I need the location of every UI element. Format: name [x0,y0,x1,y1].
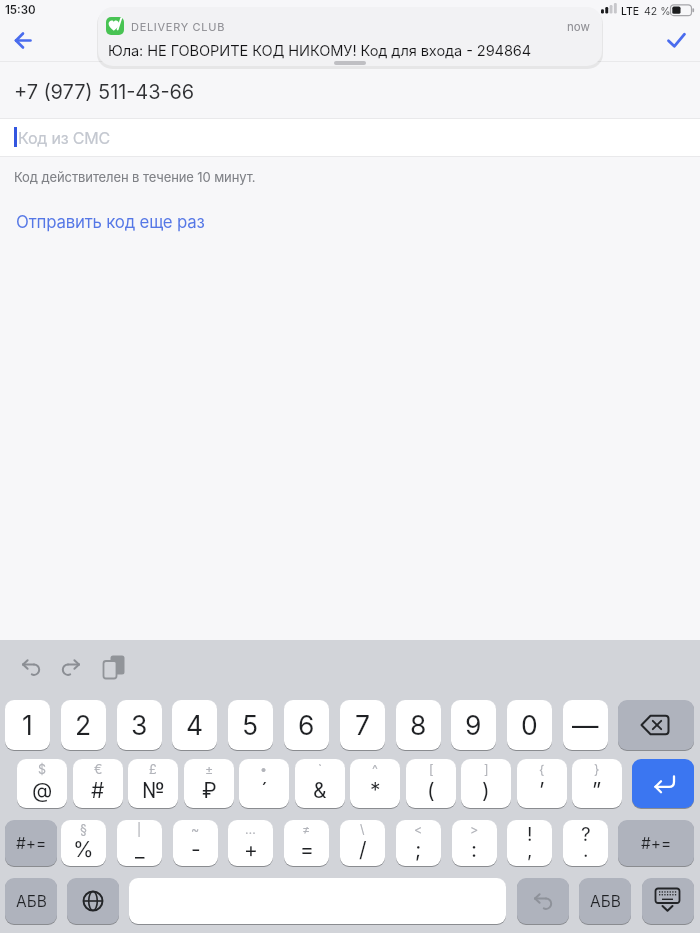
staticText: £ [149,762,157,777]
staticText: / [359,837,367,862]
staticText: ] [484,762,489,777]
button[interactable]: $ [17,759,67,808]
staticText: ^ [372,762,378,777]
staticText: ) [482,778,490,803]
staticText: ’ [539,778,545,803]
staticText: < [414,822,423,837]
staticText: now [567,20,590,34]
button[interactable]: } [572,759,622,808]
staticText: ₽ [202,778,217,803]
button[interactable]: [ [406,759,456,808]
button[interactable]: #+= [5,820,57,866]
button[interactable]: > [452,820,497,866]
button[interactable] [660,28,694,52]
button[interactable]: DELIVERY CLUB [98,7,602,66]
button[interactable]: ! [507,820,552,866]
button[interactable]: | [117,820,162,866]
staticText: Юла: НЕ ГОВОРИТЕ КОД НИКОМУ! Код для вхо… [108,42,532,60]
staticText: \ [360,822,365,837]
button[interactable]: #+= [618,820,694,866]
staticText: @ [32,778,53,803]
staticText: _ [135,837,145,862]
button[interactable] [632,759,694,808]
staticText: … [245,822,256,837]
staticText: # [91,778,105,803]
button[interactable]: 3 [117,700,162,750]
staticText: = [300,837,314,862]
button[interactable]: ≠ [284,820,329,866]
button[interactable]: 9 [451,700,496,750]
button[interactable]: \ [340,820,385,866]
staticText: 15:30 [5,3,36,17]
staticText: + [244,837,258,862]
button[interactable] [618,700,694,750]
staticText: 3 [131,709,148,741]
button[interactable] [642,878,694,924]
button[interactable]: ^ [350,759,400,808]
staticText: ! [527,823,533,846]
button[interactable] [67,878,119,924]
button[interactable]: 6 [284,700,329,750]
button[interactable] [129,878,506,924]
staticText: АБВ [16,892,47,911]
staticText: — [572,709,599,741]
button[interactable]: 8 [396,700,441,750]
button[interactable]: € [73,759,123,808]
staticText: % [73,837,94,862]
staticText: 1 [22,709,33,741]
staticText: DELIVERY CLUB [131,20,226,33]
staticText: * [370,778,381,803]
button[interactable]: … [228,820,273,866]
staticText: 6 [298,709,315,741]
button[interactable]: < [396,820,441,866]
button[interactable]: £ [128,759,178,808]
button[interactable]: — [563,700,608,750]
staticText: } [594,762,600,777]
staticText: : [471,837,478,862]
staticText: ? [581,823,591,846]
button[interactable]: АБВ [5,878,57,924]
button[interactable] [98,652,132,682]
staticText: 5 [242,709,259,741]
staticText: LTE [621,5,640,18]
button[interactable]: 1 [5,700,50,750]
button[interactable] [517,878,569,924]
staticText: 4 [186,709,204,741]
staticText: • [260,762,268,777]
staticText: № [142,778,165,803]
button[interactable]: Отправить код еще раз [10,206,199,226]
staticText: 0 [521,709,538,741]
staticText: € [94,762,103,777]
button[interactable]: ~ [173,820,218,866]
staticText: ` [318,762,323,777]
button[interactable]: 5 [228,700,273,750]
button[interactable]: ± [184,759,234,808]
button[interactable] [6,30,42,52]
staticText: 2 [75,709,92,741]
staticText: ± [205,762,214,777]
staticText: > [470,822,479,837]
button[interactable]: 4 [172,700,217,750]
staticText: $ [38,762,47,777]
button[interactable]: 2 [61,700,106,750]
button[interactable]: 0 [507,700,552,750]
button[interactable] [16,652,50,682]
staticText: ~ [191,822,200,837]
staticText: 8 [410,709,427,741]
button[interactable]: ] [461,759,511,808]
staticText: Отправить код еще раз [16,212,205,232]
staticText: #+= [641,834,672,853]
button[interactable]: АБВ [579,878,631,924]
button[interactable]: ? [563,820,608,866]
staticText: Код действителен в течение 10 минут. [14,169,256,185]
staticText: ( [427,778,435,803]
button[interactable] [56,652,90,682]
button[interactable]: { [517,759,567,808]
staticText: { [539,762,545,777]
staticText: . [583,839,589,862]
staticText: 7 [355,709,370,741]
button[interactable]: ` [295,759,345,808]
button[interactable]: § [61,820,106,866]
button[interactable]: • [239,759,289,808]
button[interactable]: 7 [340,700,385,750]
